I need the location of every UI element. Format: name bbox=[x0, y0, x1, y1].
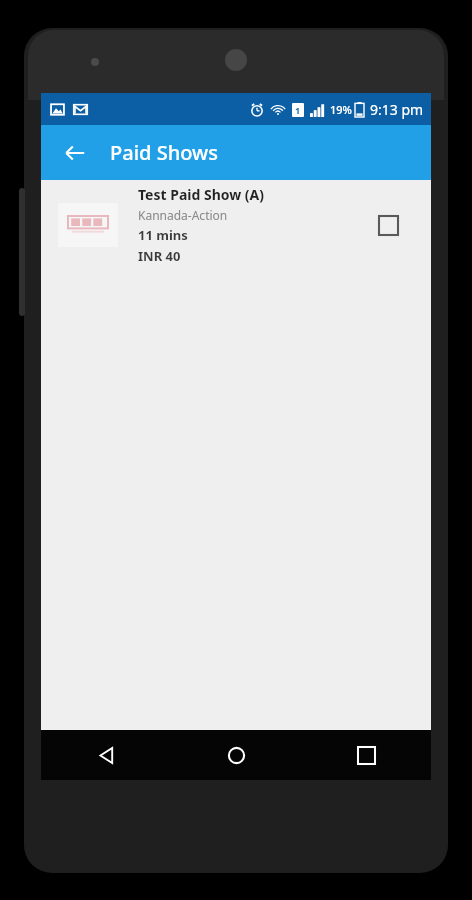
button[interactable]: Test Paid Show (A) bbox=[41, 180, 431, 270]
staticText: 19% bbox=[330, 102, 352, 117]
staticText: 1 bbox=[295, 104, 301, 116]
staticText: 11 mins bbox=[138, 226, 188, 244]
staticText: Test Paid Show (A) bbox=[138, 185, 265, 204]
staticText: INR 40 bbox=[138, 247, 181, 265]
staticText: Kannada-Action bbox=[138, 207, 228, 223]
button[interactable]: Back bbox=[55, 133, 95, 173]
button[interactable]: Back bbox=[41, 730, 171, 780]
staticText: Paid Shows bbox=[110, 139, 218, 166]
button[interactable]: Select show bbox=[371, 208, 405, 242]
button[interactable]: Home bbox=[171, 730, 301, 780]
staticText: 9:13 pm bbox=[370, 100, 424, 119]
button[interactable]: Recent apps bbox=[301, 730, 431, 780]
